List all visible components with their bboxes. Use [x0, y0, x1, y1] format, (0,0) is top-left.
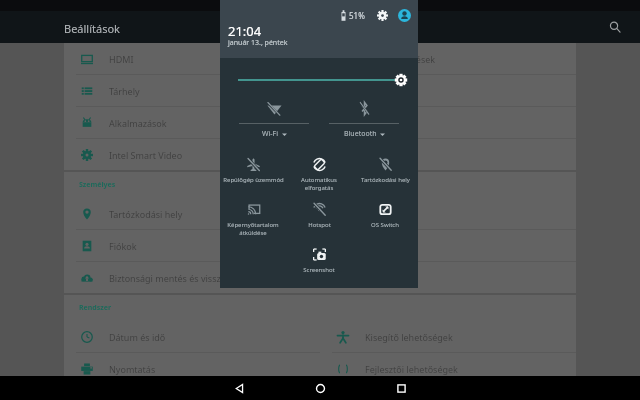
button[interactable]: OS Switch [352, 199, 418, 244]
button[interactable]: Hotspot [286, 199, 352, 244]
button[interactable]: Settings [375, 8, 390, 23]
staticText: Alkalmazások [109, 117, 167, 129]
staticText: Tartózkodási hely [109, 208, 183, 220]
staticText: Hang és jelzések [365, 53, 436, 65]
button[interactable]: Bluetooth [329, 92, 399, 142]
staticText: Fejlesztői lehetőségek [365, 363, 458, 375]
staticText: Repülőgép üzemmód [223, 176, 284, 184]
staticText: Elem [365, 117, 386, 129]
staticText: Dátum és idő [109, 331, 166, 343]
button[interactable]: User account [398, 9, 411, 22]
button[interactable]: Alkalmazások [64, 107, 320, 138]
button[interactable]: Fiókok [64, 230, 576, 261]
staticText: Screenshot [303, 266, 335, 274]
staticText: 21:04 [228, 22, 262, 40]
staticText: Nyomtatás [109, 363, 156, 375]
staticText: HDMI [109, 53, 134, 65]
button[interactable]: Nyomtatás [64, 353, 320, 384]
button[interactable]: Memória [320, 139, 576, 170]
button[interactable]: Recent apps [386, 376, 416, 400]
staticText: Hotspot [308, 221, 331, 229]
button[interactable]: Elem [320, 107, 576, 138]
staticText: Személyes [79, 180, 116, 190]
button[interactable]: Home [305, 376, 335, 400]
button[interactable]: Intel Smart Video [64, 139, 320, 170]
button[interactable]: Tárhely [64, 75, 320, 106]
button[interactable]: HDMI [64, 43, 320, 74]
button[interactable]: Kijelző [320, 75, 576, 106]
button[interactable]: Kisegítő lehetőségek [320, 321, 576, 352]
staticText: Memória [365, 149, 404, 161]
staticText: Wi-Fi [262, 129, 279, 139]
staticText: Biztonsági mentés és visszaállítás [109, 272, 251, 284]
staticText: január 13., péntek [228, 38, 288, 48]
staticText: Intel Smart Video [109, 149, 183, 161]
staticText: Képernyőtartalom átküldése [222, 221, 284, 237]
staticText: Kisegítő lehetőségek [365, 331, 453, 343]
staticText: Tartózkodási hely [361, 176, 410, 184]
staticText: Bluetooth [344, 129, 377, 139]
button[interactable]: Back [224, 376, 254, 400]
staticText: Beállítások [64, 21, 120, 36]
button[interactable]: Screenshot [286, 244, 352, 289]
button[interactable]: Biztonsági mentés és visszaállítás [64, 262, 576, 293]
button[interactable]: Tartózkodási hely [64, 198, 576, 229]
staticText: Tárhely [109, 85, 140, 97]
button[interactable]: Repülőgép üzemmód [220, 154, 286, 199]
button[interactable]: Tartózkodási hely [352, 154, 418, 199]
staticText: 51% [349, 10, 365, 21]
staticText: OS Switch [371, 221, 399, 229]
button[interactable]: Képernyőtartalom átküldése [220, 199, 286, 244]
button[interactable]: Fejlesztői lehetőségek [320, 353, 576, 384]
staticText: Automatikus elforgatás [288, 176, 350, 192]
button[interactable]: Search [602, 14, 628, 40]
button[interactable]: Hang és jelzések [320, 43, 576, 74]
button[interactable]: Wi-Fi [239, 92, 309, 142]
staticText: Fiókok [109, 240, 137, 252]
button[interactable]: Automatikus elforgatás [286, 154, 352, 199]
staticText: Rendszer [79, 303, 112, 313]
button[interactable]: Dátum és idő [64, 321, 320, 352]
